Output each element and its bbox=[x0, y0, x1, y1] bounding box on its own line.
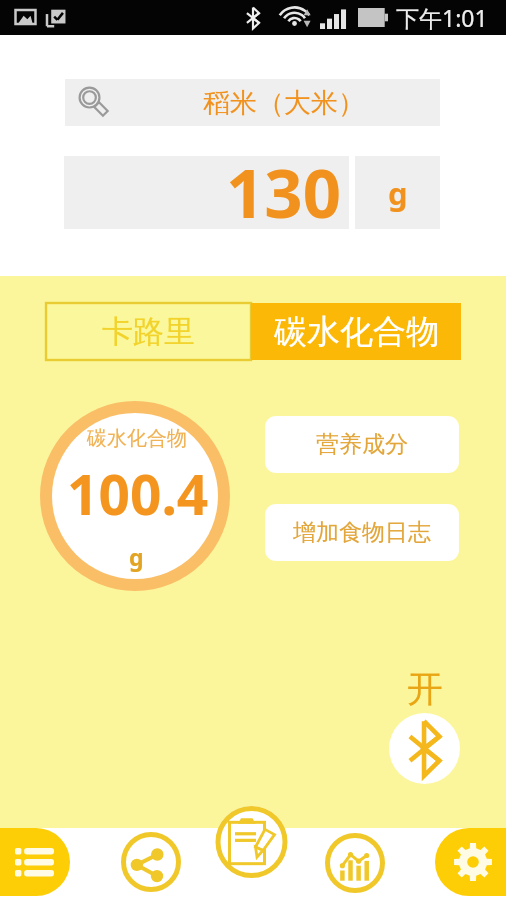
staticText: g bbox=[129, 541, 144, 572]
staticText: 营养成分 bbox=[316, 430, 408, 459]
staticText: 碳水化合物 bbox=[274, 311, 439, 353]
staticText: 碳水化合物 bbox=[87, 426, 187, 451]
staticText: 卡路里 bbox=[102, 312, 195, 351]
staticText: g bbox=[388, 172, 408, 214]
button[interactable]: 卡路里 bbox=[46, 303, 251, 360]
button[interactable]: Food diary bbox=[209, 806, 294, 878]
button[interactable]: Search bbox=[65, 79, 440, 126]
button[interactable]: Food list bbox=[0, 828, 70, 896]
button[interactable]: 碳水化合物 bbox=[251, 303, 461, 360]
staticText: 130 bbox=[226, 146, 341, 219]
button[interactable]: 增加食物日志 bbox=[265, 504, 459, 561]
button[interactable]: Share bbox=[121, 832, 181, 892]
button[interactable]: 碳水化合物 bbox=[40, 401, 230, 591]
button[interactable]: g bbox=[355, 156, 440, 229]
staticText: 下午1:01 bbox=[396, 2, 488, 33]
button[interactable]: Bluetooth on bbox=[389, 666, 460, 784]
staticText: 增加食物日志 bbox=[293, 518, 431, 547]
other: Search bbox=[78, 87, 110, 119]
button[interactable]: 130 bbox=[64, 156, 349, 229]
staticText: 开 bbox=[407, 666, 443, 711]
button[interactable]: 营养成分 bbox=[265, 416, 459, 473]
button[interactable]: Settings bbox=[435, 828, 506, 896]
staticText: 100.4 bbox=[67, 456, 209, 531]
staticText: 稻米（大米） bbox=[203, 86, 365, 120]
button[interactable]: Statistics bbox=[325, 833, 385, 893]
